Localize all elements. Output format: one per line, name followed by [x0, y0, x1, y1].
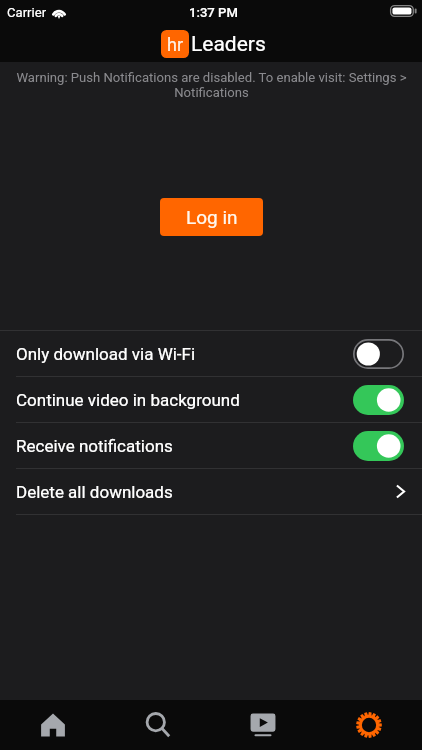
button[interactable]: Log in [160, 198, 263, 236]
button[interactable]: Videos [210, 700, 316, 750]
staticText: Warning: Push Notifications are disabled… [16, 70, 407, 100]
staticText: Only download via Wi-Fi [16, 344, 196, 364]
button[interactable]: Only download via Wi-Fi [0, 331, 422, 376]
staticText: Receive notifications [16, 436, 173, 456]
staticText: Leaders [191, 32, 266, 57]
button[interactable]: Delete all downloads [0, 469, 422, 514]
staticText: Carrier [7, 5, 47, 20]
staticText: hr [167, 34, 184, 55]
button[interactable]: Receive notifications [0, 423, 422, 468]
staticText: 1:37 PM [189, 5, 238, 20]
button[interactable]: Settings [316, 700, 422, 750]
staticText: Delete all downloads [16, 482, 173, 502]
button[interactable]: Home [0, 700, 105, 750]
staticText: Continue video in background [16, 390, 240, 410]
button[interactable]: Continue video in background [0, 377, 422, 422]
button[interactable]: Search [105, 700, 210, 750]
staticText: Log in [186, 206, 238, 228]
